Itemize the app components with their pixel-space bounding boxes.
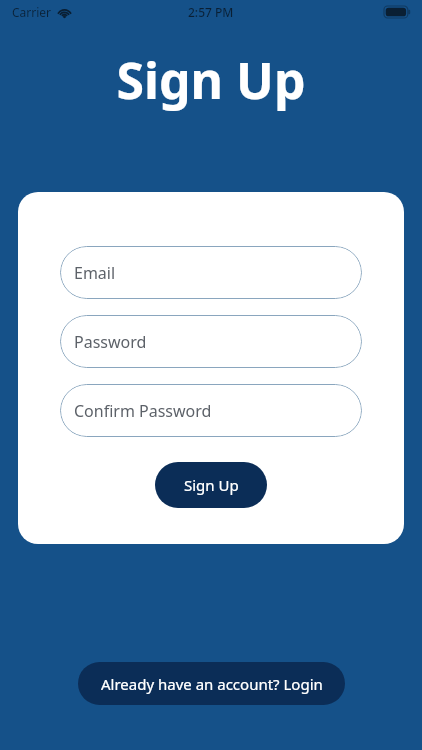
button[interactable]: Confirm Password: [60, 384, 362, 437]
button[interactable]: Sign Up: [155, 462, 267, 508]
staticText: 2:57 PM: [188, 4, 234, 20]
staticText: Password: [74, 331, 147, 353]
button[interactable]: Already have an account? Login: [78, 662, 345, 705]
staticText: Sign Up: [0, 46, 422, 114]
staticText: Sign Up: [184, 475, 239, 495]
button[interactable]: Email: [60, 246, 362, 299]
staticText: Confirm Password: [74, 400, 212, 422]
button[interactable]: Password: [60, 315, 362, 368]
staticText: Carrier: [12, 4, 52, 20]
staticText: Already have an account? Login: [101, 674, 323, 694]
staticText: Email: [74, 262, 116, 284]
